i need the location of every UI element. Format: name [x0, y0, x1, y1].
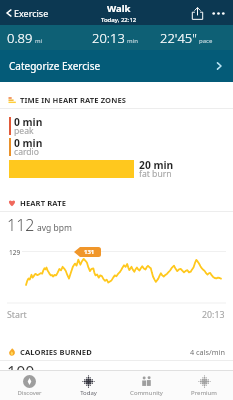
staticText: 20 min	[139, 158, 174, 172]
staticText: Today	[80, 389, 97, 397]
staticText: mi	[35, 37, 43, 45]
staticText: 0 min	[14, 115, 43, 129]
staticText: 0 min	[14, 136, 43, 150]
staticText: 20:13	[202, 309, 225, 321]
button[interactable]: Discover	[0, 371, 59, 400]
staticText: 22'45"	[160, 29, 197, 47]
button[interactable]: Categorize Exercise	[0, 50, 233, 82]
staticText: HEART RATE	[20, 198, 66, 208]
staticText: 0.89	[7, 29, 33, 47]
button[interactable]: Premium	[175, 371, 233, 400]
staticText: 20:13	[92, 29, 125, 47]
staticText: 131	[84, 248, 95, 256]
staticText: pace	[199, 37, 213, 45]
staticText: Today, 22:12	[101, 16, 137, 24]
staticText: peak	[14, 125, 34, 137]
button[interactable]: Today	[59, 371, 117, 400]
staticText: Premium	[191, 389, 217, 397]
staticText: 4 cals/min	[190, 347, 225, 357]
staticText: cardio	[14, 146, 40, 158]
button[interactable]: More options	[208, 3, 228, 23]
staticText: min	[127, 37, 138, 45]
staticText: TIME IN HEART RATE ZONES	[20, 95, 127, 105]
button[interactable]: Community	[117, 371, 175, 400]
staticText: 112	[7, 214, 35, 236]
staticText: Exercise	[14, 7, 49, 19]
staticText: 129	[9, 248, 21, 257]
button[interactable]: Exercise	[3, 3, 51, 23]
staticText: fat burn	[139, 168, 172, 180]
staticText: Discover	[17, 389, 42, 397]
staticText: 100	[7, 361, 35, 383]
staticText: Walk	[107, 2, 131, 15]
button[interactable]: Share	[188, 4, 206, 22]
staticText: avg bpm	[37, 222, 72, 234]
staticText: Categorize Exercise	[9, 59, 101, 73]
staticText: Community	[130, 389, 163, 397]
staticText: Start	[7, 309, 27, 321]
staticText: CALORIES BURNED	[20, 347, 92, 357]
